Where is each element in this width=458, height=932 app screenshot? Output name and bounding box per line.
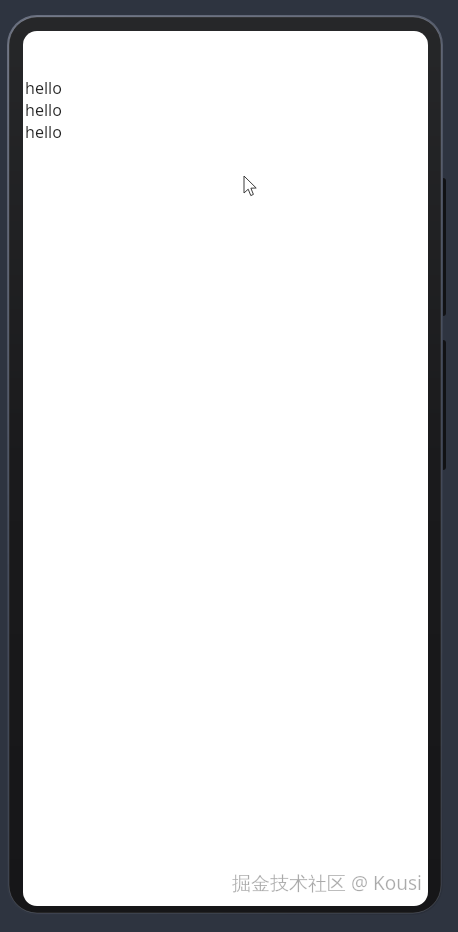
staticText: hello xyxy=(25,77,62,99)
staticText: 掘金技术社区 @ Kousi xyxy=(232,870,422,896)
button[interactable]: Volume button xyxy=(436,178,446,316)
staticText: hello xyxy=(25,99,62,121)
button[interactable]: Power button xyxy=(436,340,446,470)
staticText: hello xyxy=(25,121,62,143)
